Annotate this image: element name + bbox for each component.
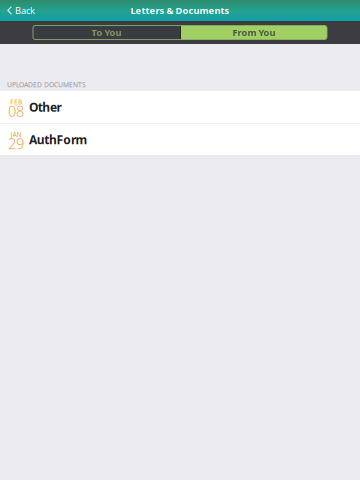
staticText: AuthForm: [29, 131, 88, 147]
staticText: JAN: [10, 130, 21, 139]
staticText: 29: [8, 134, 24, 153]
staticText: Other: [29, 99, 62, 115]
staticText: From You: [232, 26, 275, 39]
button[interactable]: FEB: [0, 91, 360, 123]
staticText: UPLOADED DOCUMENTS: [7, 80, 86, 89]
staticText: 08: [8, 101, 24, 121]
button[interactable]: From You: [181, 25, 327, 39]
staticText: FEB: [10, 98, 22, 106]
staticText: Letters & Documents: [130, 4, 229, 17]
staticText: To You: [91, 26, 121, 39]
button[interactable]: To You: [33, 25, 180, 39]
button[interactable]: Back: [0, 0, 41, 21]
staticText: Back: [15, 4, 35, 17]
button[interactable]: JAN: [0, 123, 360, 155]
